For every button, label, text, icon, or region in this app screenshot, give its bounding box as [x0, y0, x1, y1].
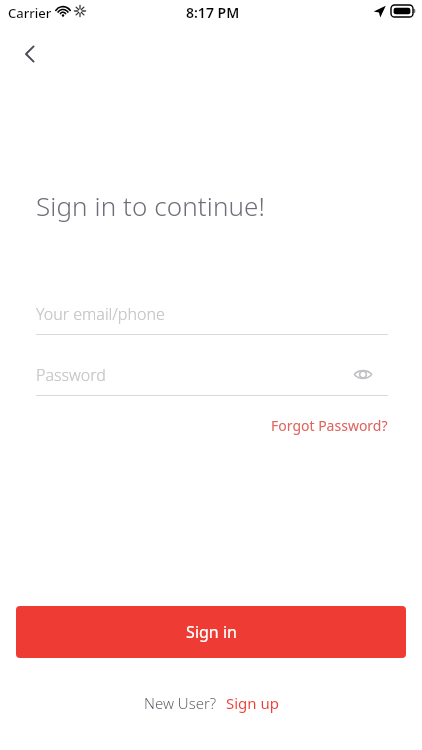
staticText: Carrier: [8, 4, 52, 22]
staticText: Sign up: [226, 693, 279, 713]
staticText: Your email/phone: [36, 303, 165, 325]
staticText: Forgot Password?: [271, 416, 388, 435]
button[interactable]: Show password: [349, 360, 377, 388]
staticText: 8:17 PM: [186, 3, 240, 22]
button[interactable]: Password: [36, 356, 388, 394]
button[interactable]: Back: [10, 34, 50, 74]
button[interactable]: Forgot Password?: [250, 412, 388, 438]
button[interactable]: Your email/phone: [36, 295, 388, 333]
button[interactable]: Sign in: [16, 606, 406, 658]
staticText: New User?: [144, 693, 217, 713]
staticText: Sign in: [186, 621, 237, 643]
staticText: Password: [36, 364, 106, 386]
button[interactable]: Sign up: [226, 693, 279, 713]
staticText: Sign in to continue!: [36, 188, 265, 223]
